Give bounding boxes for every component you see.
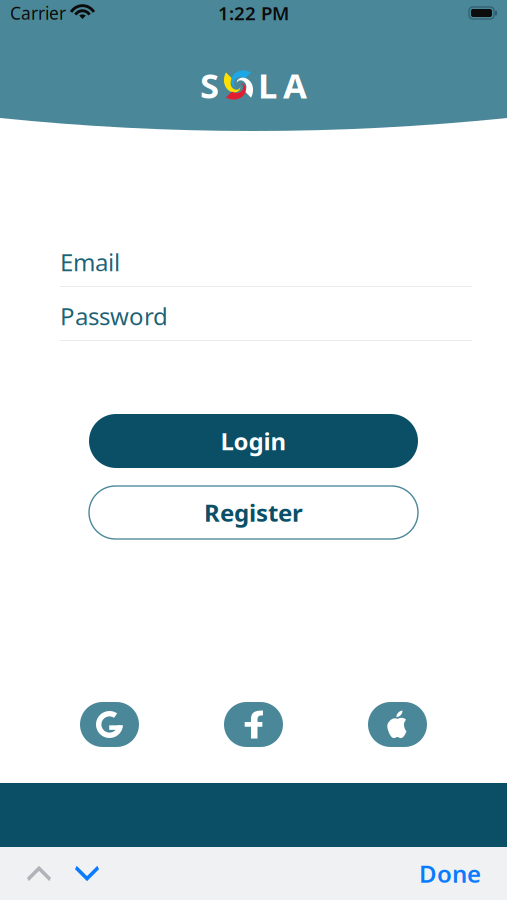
staticText: Login [220,425,286,457]
staticText: Email [60,246,120,278]
staticText: Done [419,858,481,889]
button[interactable]: Previous field [17,854,61,892]
staticText: S [200,62,219,108]
button[interactable]: Sign in with Google [80,702,139,747]
staticText: Carrier [10,1,66,24]
button[interactable]: Sign in with Facebook [224,702,283,747]
button[interactable]: Login [89,414,418,468]
staticText: A [283,62,307,108]
button[interactable]: Next field [61,854,113,892]
staticText: Register [204,497,303,528]
button[interactable]: Sign in with Apple [368,702,427,747]
staticText: L [258,62,277,108]
button[interactable]: Done [410,847,490,900]
staticText: Password [60,300,168,332]
staticText: 1:22 PM [218,1,289,25]
button[interactable]: Register [89,486,418,539]
